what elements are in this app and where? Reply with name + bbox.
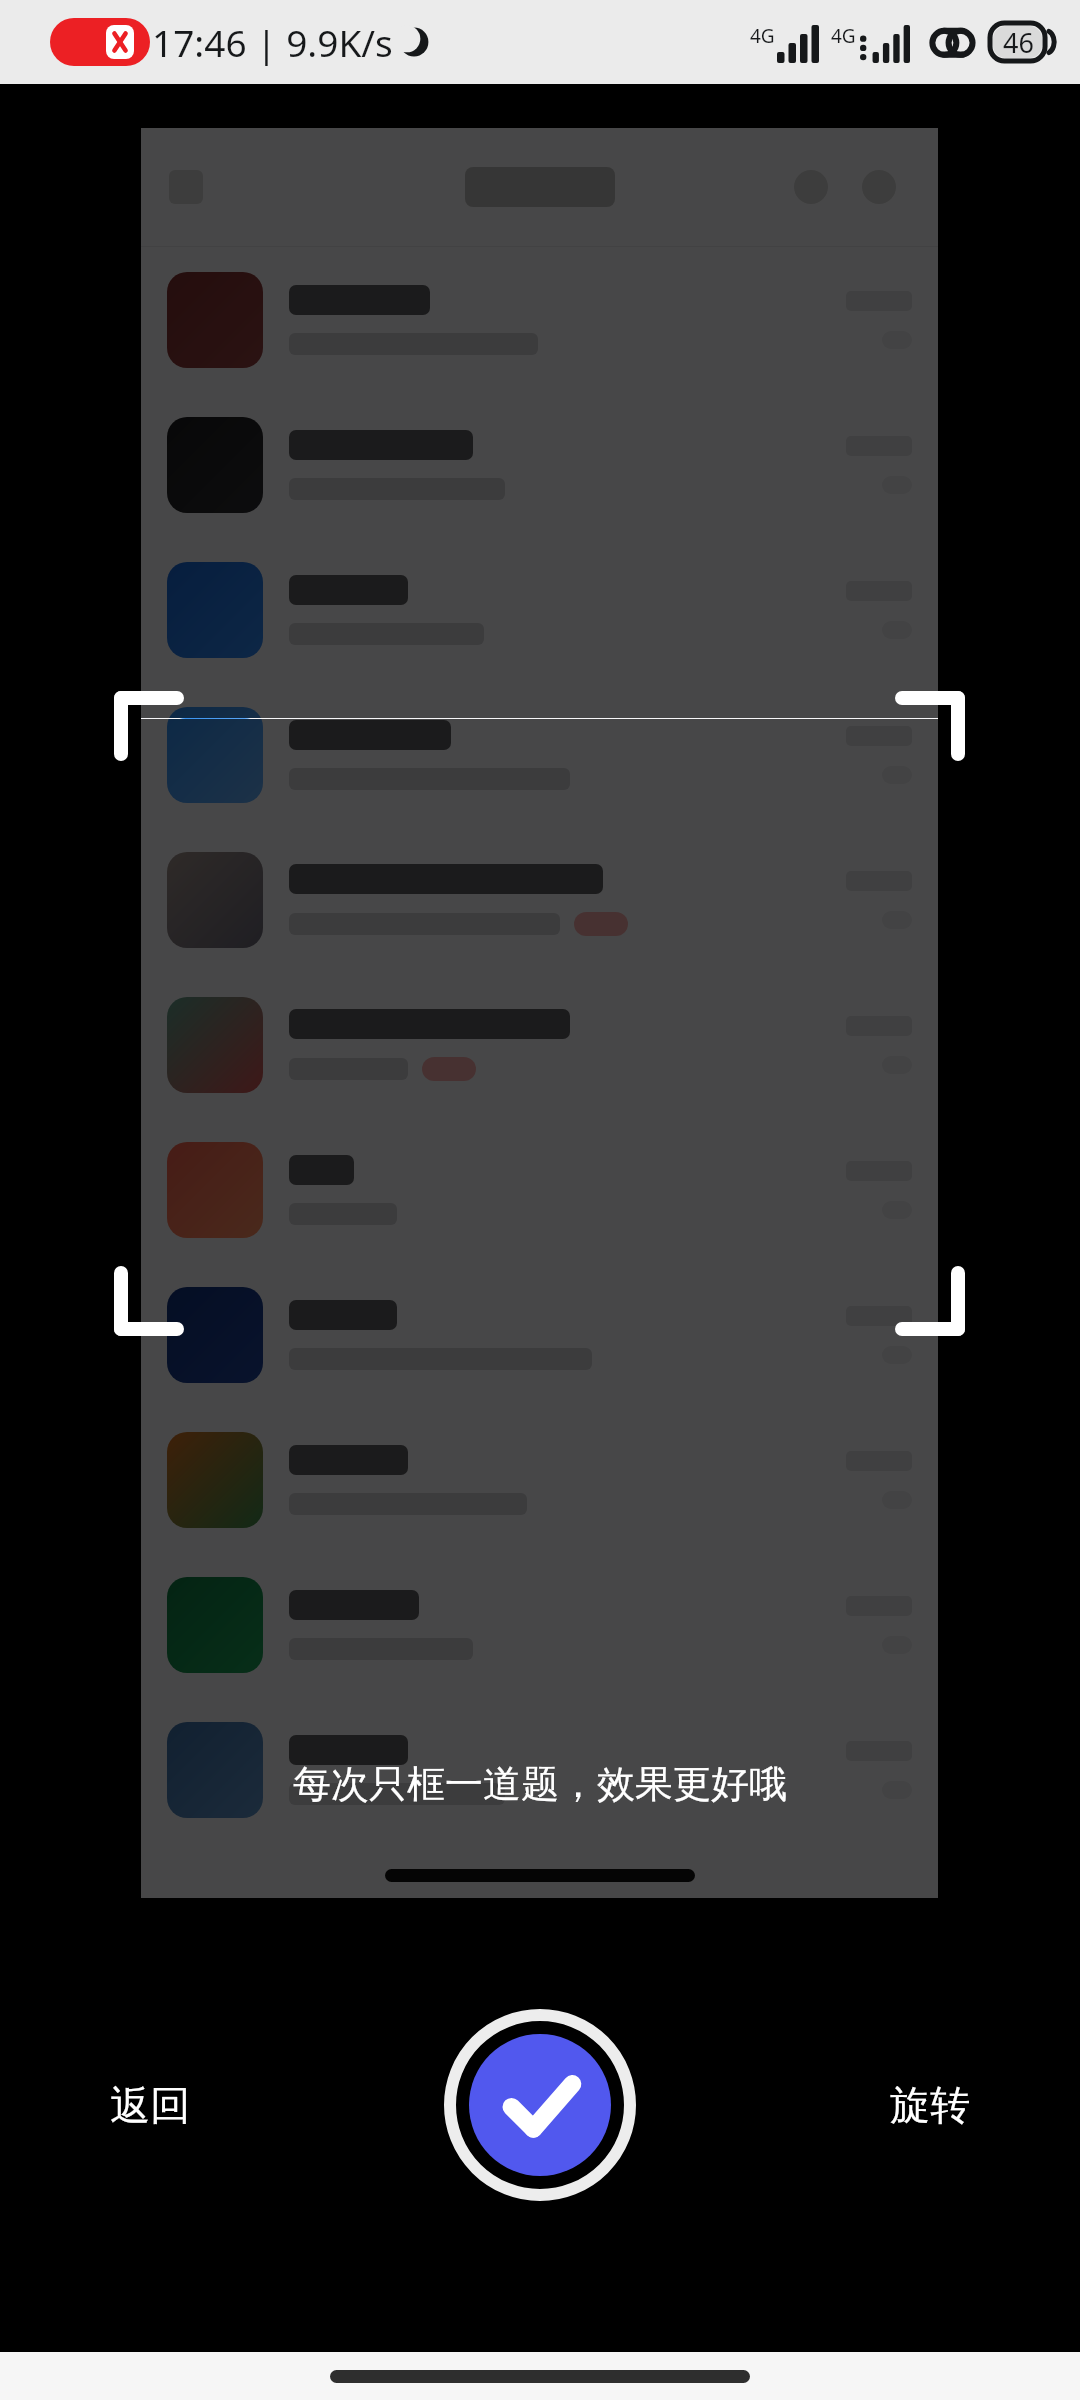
- staticText: 4G: [831, 23, 856, 49]
- staticText: 17:46 | 9.9K/s: [152, 17, 393, 67]
- button[interactable]: 旋转: [780, 2000, 1080, 2210]
- staticText: 4G: [750, 23, 775, 49]
- staticText: 返回: [110, 2080, 190, 2130]
- staticText: 46: [1003, 24, 1034, 61]
- button[interactable]: 确认: [445, 2010, 635, 2200]
- button[interactable]: 返回: [0, 2000, 300, 2210]
- staticText: 旋转: [890, 2080, 970, 2130]
- staticText: 每次只框一道题，效果更好哦: [0, 1760, 1080, 1808]
